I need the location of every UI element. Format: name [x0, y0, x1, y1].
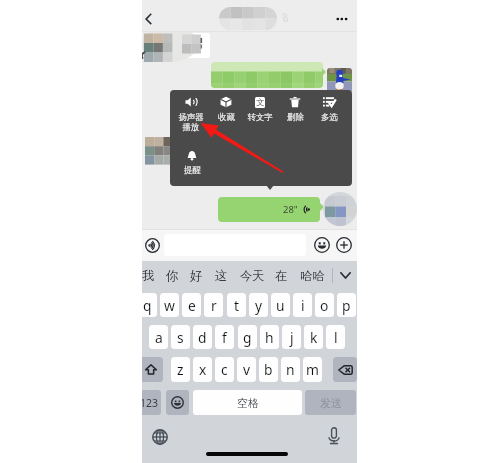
- button[interactable]: 提醒: [175, 149, 209, 176]
- staticText: z: [177, 360, 184, 379]
- staticText: 扬声器 播放: [178, 112, 204, 133]
- button[interactable]: Hide keyboard: [334, 264, 357, 287]
- staticText: a: [155, 328, 163, 347]
- staticText: c: [221, 360, 228, 379]
- staticText: 这: [215, 268, 228, 283]
- button[interactable]: Shift: [142, 357, 163, 382]
- button[interactable]: 28": [218, 197, 320, 222]
- button[interactable]: d: [193, 325, 212, 349]
- button[interactable]: [211, 62, 323, 88]
- staticText: i: [301, 296, 305, 315]
- staticText: s: [177, 328, 184, 347]
- button[interactable]: [173, 33, 210, 58]
- staticText: u: [276, 296, 285, 315]
- staticText: g: [243, 328, 252, 347]
- staticText: 转文字: [247, 112, 273, 123]
- staticText: 删除: [287, 112, 304, 123]
- staticText: 你: [166, 268, 179, 283]
- staticText: n: [286, 360, 295, 379]
- button[interactable]: g: [238, 325, 257, 349]
- button[interactable]: 我: [142, 264, 155, 287]
- button[interactable]: v: [237, 357, 256, 382]
- staticText: o: [320, 296, 329, 315]
- staticText: d: [198, 328, 207, 347]
- button[interactable]: 多选: [312, 96, 346, 123]
- button[interactable]: a: [149, 325, 168, 349]
- button[interactable]: z: [171, 357, 190, 382]
- button[interactable]: 今天: [239, 264, 265, 287]
- button[interactable]: e: [182, 293, 201, 317]
- button[interactable]: s: [171, 325, 190, 349]
- staticText: r: [211, 296, 217, 315]
- button[interactable]: k: [304, 325, 323, 349]
- staticText: 哈哈: [300, 268, 325, 283]
- button[interactable]: 空格: [193, 390, 302, 415]
- button[interactable]: Switch language: [150, 427, 170, 447]
- button[interactable]: 这: [215, 264, 228, 287]
- staticText: v: [243, 360, 251, 379]
- staticText: 空格: [237, 396, 259, 410]
- button[interactable]: n: [281, 357, 300, 382]
- staticText: j: [290, 328, 294, 347]
- staticText: w: [164, 296, 175, 315]
- staticText: 收藏: [218, 112, 235, 123]
- button[interactable]: 在: [275, 264, 288, 287]
- button[interactable]: 扬声器 播放: [174, 96, 208, 133]
- staticText: 123: [142, 396, 159, 410]
- staticText: 好: [190, 268, 203, 283]
- staticText: 文: [256, 97, 265, 108]
- button[interactable]: Emoji: [314, 237, 330, 253]
- button[interactable]: h: [260, 325, 279, 349]
- staticText: p: [342, 296, 351, 315]
- staticText: t: [234, 296, 239, 315]
- staticText: 在: [275, 268, 288, 283]
- button[interactable]: f: [215, 325, 234, 349]
- button[interactable]: u: [271, 293, 290, 317]
- button[interactable]: l: [326, 325, 345, 349]
- staticText: 今天: [240, 268, 265, 283]
- staticText: h: [265, 328, 274, 347]
- button[interactable]: 发送: [305, 390, 356, 415]
- button[interactable]: Back: [142, 7, 162, 31]
- button[interactable]: 好: [190, 264, 203, 287]
- button[interactable]: 文: [243, 96, 277, 123]
- button[interactable]: Voice input: [145, 238, 160, 253]
- button[interactable]: Backspace: [333, 357, 357, 382]
- button[interactable]: Emoji keyboard: [166, 390, 189, 415]
- button[interactable]: x: [193, 357, 212, 382]
- staticText: y: [255, 296, 263, 315]
- button[interactable]: More functions: [336, 237, 352, 253]
- button[interactable]: q: [142, 293, 157, 317]
- button[interactable]: b: [259, 357, 278, 382]
- button[interactable]: i: [293, 293, 312, 317]
- button[interactable]: 你: [166, 264, 179, 287]
- staticText: 提醒: [184, 165, 201, 176]
- staticText: 发送: [320, 396, 342, 410]
- staticText: f: [222, 328, 227, 347]
- button[interactable]: p: [337, 293, 356, 317]
- button[interactable]: More options: [329, 7, 353, 31]
- button[interactable]: 收藏: [209, 96, 243, 123]
- button[interactable]: r: [204, 293, 223, 317]
- button[interactable]: o: [315, 293, 334, 317]
- button[interactable]: 哈哈: [299, 264, 325, 287]
- button[interactable]: m: [303, 357, 322, 382]
- staticText: e: [188, 296, 196, 315]
- staticText: l: [334, 328, 338, 347]
- staticText: 28": [283, 203, 298, 216]
- staticText: x: [199, 360, 207, 379]
- staticText: q: [143, 296, 152, 315]
- button[interactable]: 删除: [278, 96, 312, 123]
- button[interactable]: y: [249, 293, 268, 317]
- staticText: 我: [142, 268, 155, 283]
- button[interactable]: 123: [142, 390, 161, 415]
- staticText: 多选: [321, 112, 338, 123]
- button[interactable]: w: [160, 293, 179, 317]
- staticText: b: [264, 360, 273, 379]
- button[interactable]: Microphone: [324, 426, 344, 446]
- button[interactable]: c: [215, 357, 234, 382]
- staticText: k: [310, 328, 318, 347]
- button[interactable]: j: [282, 325, 301, 349]
- button[interactable]: t: [227, 293, 246, 317]
